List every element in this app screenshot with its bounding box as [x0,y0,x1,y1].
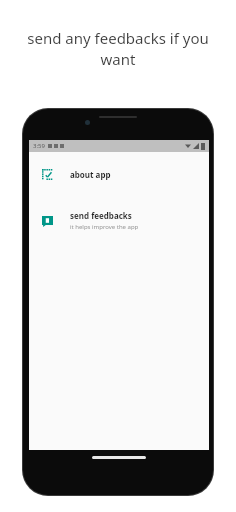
other: Send feedbacks [41,215,53,227]
button[interactable]: About app [29,162,209,186]
staticText: about app [70,169,111,180]
button[interactable]: Send feedbacks [29,204,209,237]
other: About app [41,168,53,180]
staticText: it helps improve the app [70,223,139,231]
staticText: send feedbacks [70,210,132,221]
staticText: send any feedbacks if you want [14,28,222,70]
staticText: 3:59 [33,142,45,150]
